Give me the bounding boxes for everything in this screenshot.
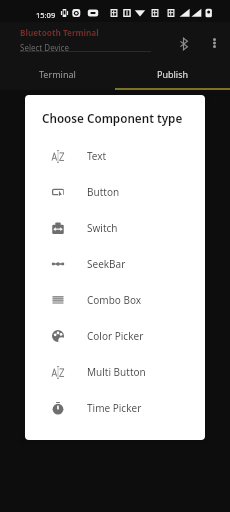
button[interactable]: Switch xyxy=(25,210,205,246)
staticText: Select Device xyxy=(20,42,69,53)
staticText: Choose Component type xyxy=(42,110,183,126)
button[interactable]: Combo Box xyxy=(25,282,205,318)
staticText: Color Picker xyxy=(87,329,144,343)
button[interactable]: Publish xyxy=(115,58,230,88)
staticText: 15:09 xyxy=(36,10,56,20)
button[interactable]: Multi Button xyxy=(25,354,205,390)
button[interactable]: Button xyxy=(25,174,205,210)
button[interactable]: Time Picker xyxy=(25,390,205,426)
staticText: Button xyxy=(87,185,120,199)
staticText: Multi Button xyxy=(87,365,146,379)
staticText: Switch xyxy=(87,221,118,235)
button[interactable]: Text xyxy=(25,138,205,174)
staticText: Bluetooth Terminal xyxy=(20,27,99,38)
staticText: Time Picker xyxy=(87,401,142,415)
staticText: Combo Box xyxy=(87,293,142,307)
button[interactable]: SeekBar xyxy=(25,246,205,282)
button[interactable]: Bluetooth xyxy=(172,32,195,55)
button[interactable]: More options xyxy=(203,31,226,54)
button[interactable]: Terminal xyxy=(0,58,115,88)
staticText: Publish xyxy=(157,68,189,80)
button[interactable]: Color Picker xyxy=(25,318,205,354)
staticText: Text xyxy=(87,149,107,163)
staticText: SeekBar xyxy=(87,257,126,271)
staticText: Terminal xyxy=(39,68,76,80)
